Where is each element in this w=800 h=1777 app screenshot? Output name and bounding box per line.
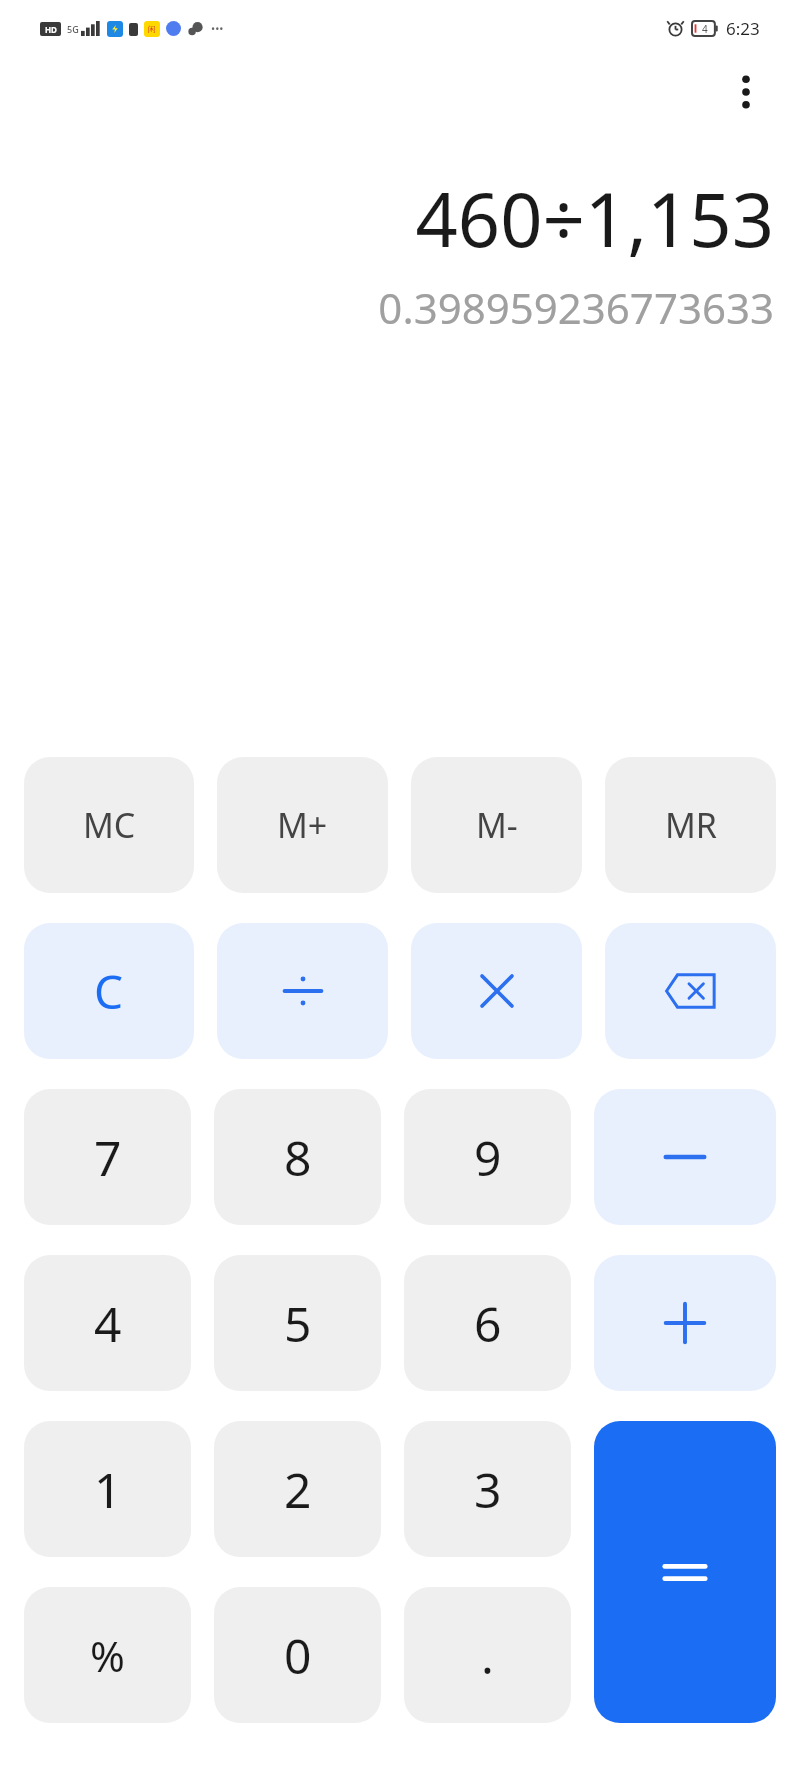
button[interactable]: 0 xyxy=(214,1587,381,1723)
button[interactable]: 8 xyxy=(214,1089,381,1225)
staticText: 6 xyxy=(474,1291,502,1356)
staticText: 460÷1,153 xyxy=(415,168,774,269)
button[interactable]: M- xyxy=(411,757,582,893)
staticText: 0.398959236773633 xyxy=(378,279,774,336)
button[interactable]: M+ xyxy=(217,757,388,893)
button[interactable]: Minus xyxy=(594,1089,776,1225)
staticText: . xyxy=(481,1623,494,1688)
staticText: 闲 xyxy=(148,24,156,34)
staticText: ••• xyxy=(211,21,224,36)
button[interactable]: More options xyxy=(718,64,774,120)
staticText: % xyxy=(90,1627,125,1684)
button[interactable]: C xyxy=(24,923,194,1059)
button[interactable]: 7 xyxy=(24,1089,191,1225)
button[interactable]: Divide xyxy=(217,923,388,1059)
button[interactable]: Backspace xyxy=(605,923,776,1059)
button[interactable]: 6 xyxy=(404,1255,571,1391)
staticText: 1 xyxy=(94,1457,122,1522)
staticText: 4 xyxy=(702,22,708,36)
staticText: M- xyxy=(476,802,518,848)
staticText: MR xyxy=(665,802,717,848)
staticText: 5 xyxy=(284,1291,312,1356)
button[interactable]: MC xyxy=(24,757,194,893)
staticText: MC xyxy=(83,802,136,848)
staticText: 9 xyxy=(474,1125,502,1190)
staticText: 2 xyxy=(284,1457,312,1522)
staticText: 6:23 xyxy=(726,17,760,40)
button[interactable]: 3 xyxy=(404,1421,571,1557)
staticText: C xyxy=(94,960,124,1023)
staticText: 5G xyxy=(67,23,79,35)
button[interactable]: MR xyxy=(605,757,776,893)
button[interactable]: 1 xyxy=(24,1421,191,1557)
button[interactable]: Plus xyxy=(594,1255,776,1391)
button[interactable]: . xyxy=(404,1587,571,1723)
staticText: 3 xyxy=(474,1457,502,1522)
button[interactable]: 2 xyxy=(214,1421,381,1557)
button[interactable]: Equals xyxy=(594,1421,776,1723)
button[interactable]: Multiply xyxy=(411,923,582,1059)
button[interactable]: % xyxy=(24,1587,191,1723)
staticText: M+ xyxy=(277,802,328,848)
staticText: 8 xyxy=(284,1125,312,1190)
button[interactable]: 9 xyxy=(404,1089,571,1225)
staticText: 0 xyxy=(284,1623,312,1688)
staticText: 4 xyxy=(94,1291,122,1356)
button[interactable]: 5 xyxy=(214,1255,381,1391)
staticText: 7 xyxy=(94,1125,122,1190)
staticText: HD xyxy=(45,24,57,35)
button[interactable]: 4 xyxy=(24,1255,191,1391)
